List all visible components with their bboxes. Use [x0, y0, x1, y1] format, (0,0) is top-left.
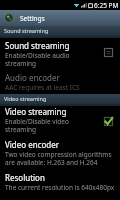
staticText: Video streaming — [4, 95, 47, 102]
button[interactable]: App icon — [4, 13, 14, 23]
staticText: Enable/Disable video streaming — [5, 117, 92, 134]
staticText: 6:25 PM — [94, 1, 119, 10]
button[interactable]: Toggle Video streaming — [96, 106, 120, 137]
staticText: Sound streaming — [4, 27, 49, 34]
button[interactable]: Audio encoder — [0, 70, 120, 94]
button[interactable]: Toggle Sound streaming — [96, 38, 120, 70]
button[interactable]: Video encoder — [0, 137, 120, 170]
staticText: Resolution — [5, 172, 45, 183]
staticText: Sound streaming — [5, 40, 70, 51]
staticText: Settings — [20, 14, 45, 23]
button[interactable]: Sound streaming — [0, 38, 120, 70]
staticText: AAC requires at least ICS — [5, 83, 80, 92]
button[interactable]: Video streaming — [0, 106, 120, 137]
staticText: The current resolution is 640x480px — [5, 183, 115, 192]
button[interactable]: Resolution — [0, 170, 120, 200]
staticText: Video encoder — [5, 139, 60, 150]
staticText: Enable/Disable audio streaming — [5, 51, 92, 68]
staticText: Two video compression algorithms are ava… — [5, 150, 116, 167]
staticText: Audio encoder — [5, 72, 60, 83]
staticText: Video streaming — [5, 106, 67, 117]
